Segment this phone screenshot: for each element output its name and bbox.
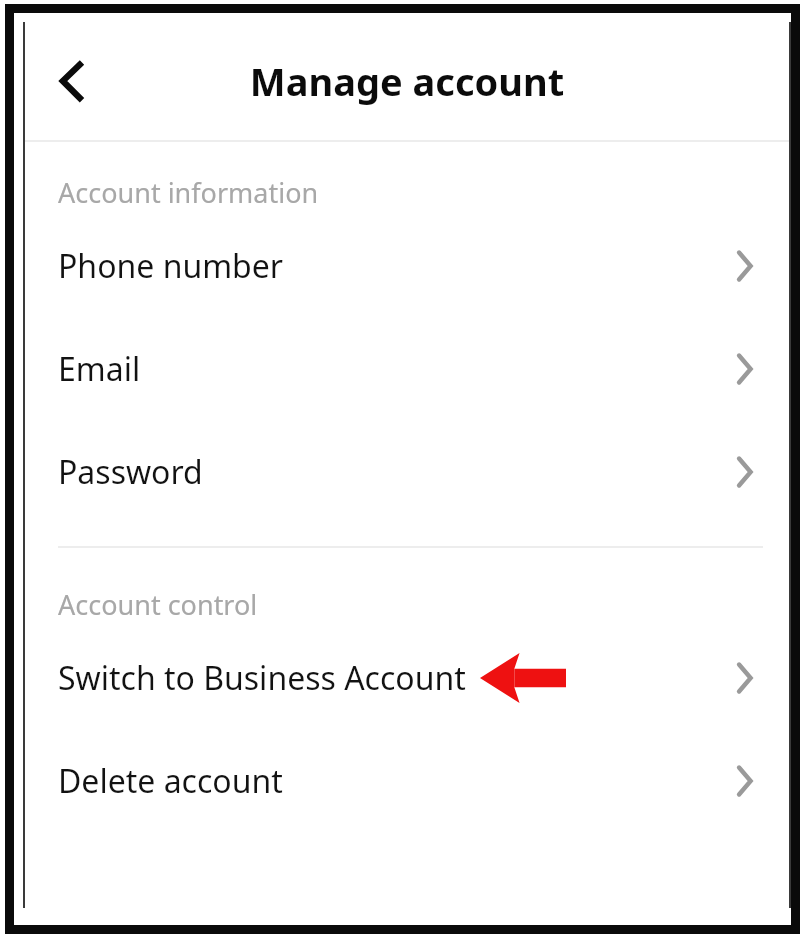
staticText: Email xyxy=(58,347,141,391)
button[interactable]: Switch to Business Account xyxy=(25,626,789,729)
button[interactable]: Password xyxy=(25,420,789,523)
staticText: Manage account xyxy=(25,55,789,107)
staticText: Switch to Business Account xyxy=(58,656,466,700)
button[interactable]: Email xyxy=(25,317,789,420)
button[interactable]: Phone number xyxy=(25,214,789,317)
staticText: Phone number xyxy=(58,244,284,288)
staticText: Delete account xyxy=(58,759,283,803)
staticText: Account control xyxy=(58,586,258,623)
button[interactable]: Back xyxy=(45,53,101,109)
button[interactable]: Delete account xyxy=(25,729,789,832)
staticText: Account information xyxy=(58,174,319,211)
staticText: Password xyxy=(58,450,203,494)
